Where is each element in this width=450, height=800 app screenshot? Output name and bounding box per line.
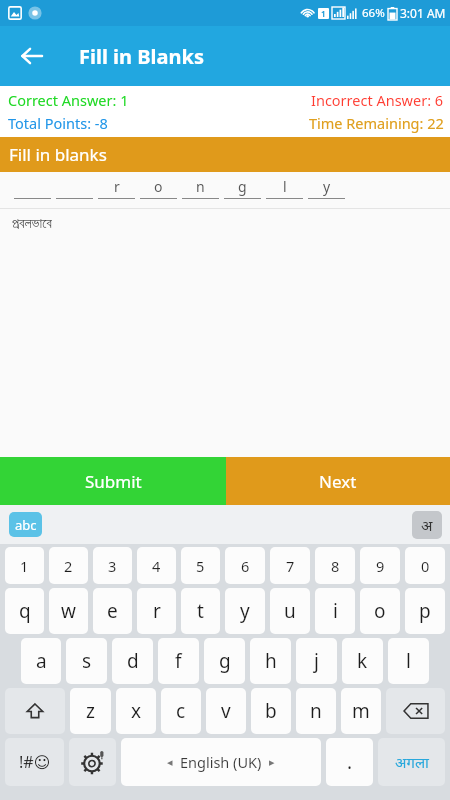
staticText: e xyxy=(107,598,118,624)
staticText: Next xyxy=(319,470,357,493)
staticText: d xyxy=(127,648,139,674)
button[interactable]: Next xyxy=(226,457,450,505)
button[interactable]: m xyxy=(341,688,381,734)
button[interactable]: Submit xyxy=(0,457,226,505)
staticText: g xyxy=(219,648,231,674)
staticText: l xyxy=(283,177,287,196)
staticText: o xyxy=(154,177,163,196)
staticText: English (UK) xyxy=(180,752,262,772)
button[interactable]: u xyxy=(270,588,310,634)
button[interactable]: 1 xyxy=(5,547,44,584)
staticText: Total Points: -8 xyxy=(8,113,108,133)
button[interactable]: . xyxy=(326,738,373,786)
staticText: Submit xyxy=(85,470,142,493)
staticText: l xyxy=(406,648,411,674)
button[interactable]: s xyxy=(66,638,107,684)
staticText: g xyxy=(238,177,247,196)
button[interactable]: l xyxy=(388,638,429,684)
button[interactable]: k xyxy=(342,638,383,684)
button[interactable]: z xyxy=(70,688,111,734)
button[interactable]: 3 xyxy=(93,547,132,584)
staticText: 6 xyxy=(241,556,250,576)
button[interactable]: अगला xyxy=(378,738,445,786)
staticText: अगला xyxy=(395,752,429,772)
staticText: p xyxy=(419,598,431,624)
staticText: . xyxy=(347,749,353,775)
button[interactable]: 0 xyxy=(405,547,445,584)
staticText: Incorrect Answer: 6 xyxy=(311,90,444,110)
staticText: y xyxy=(240,598,250,624)
staticText: !#☺ xyxy=(19,751,51,773)
staticText: abc xyxy=(15,516,37,534)
button[interactable]: Settings xyxy=(69,738,116,786)
staticText: Correct Answer: 1 xyxy=(8,90,129,110)
button[interactable]: g xyxy=(204,638,245,684)
button[interactable]: ◂ xyxy=(121,738,321,786)
staticText: n xyxy=(310,698,322,724)
staticText: अ xyxy=(421,515,433,535)
staticText: z xyxy=(86,698,95,724)
button[interactable]: Back xyxy=(10,34,54,78)
button[interactable]: h xyxy=(250,638,291,684)
button[interactable]: 9 xyxy=(360,547,400,584)
button[interactable]: i xyxy=(315,588,355,634)
button[interactable]: r xyxy=(137,588,176,634)
button[interactable]: Symbols and emoji xyxy=(5,738,64,786)
button[interactable]: 2 xyxy=(49,547,88,584)
staticText: ▸ xyxy=(269,756,275,769)
button[interactable]: Switch language xyxy=(412,511,442,539)
button[interactable]: t xyxy=(181,588,220,634)
staticText: 66% xyxy=(362,5,385,21)
staticText: 4 xyxy=(152,556,161,576)
staticText: প্রবলভাবে xyxy=(12,217,52,231)
staticText: 1 xyxy=(20,556,29,576)
button[interactable]: n xyxy=(296,688,336,734)
staticText: c xyxy=(176,698,186,724)
button[interactable]: 6 xyxy=(225,547,265,584)
button[interactable]: 7 xyxy=(270,547,310,584)
staticText: 3:01 AM xyxy=(400,5,446,21)
staticText: u xyxy=(284,598,296,624)
staticText: w xyxy=(61,598,76,624)
button[interactable]: x xyxy=(116,688,156,734)
staticText: t xyxy=(197,598,204,624)
staticText: o xyxy=(374,598,386,624)
button[interactable]: c xyxy=(161,688,201,734)
button[interactable]: abc xyxy=(9,512,42,537)
button[interactable]: e xyxy=(93,588,132,634)
button[interactable]: y xyxy=(225,588,265,634)
staticText: x xyxy=(131,698,142,724)
staticText: m xyxy=(352,698,370,724)
staticText: i xyxy=(333,598,338,624)
button[interactable]: v xyxy=(206,688,246,734)
button[interactable]: 5 xyxy=(181,547,220,584)
button[interactable]: d xyxy=(112,638,153,684)
button[interactable]: q xyxy=(5,588,44,634)
staticText: f xyxy=(175,648,182,674)
button[interactable]: f xyxy=(158,638,199,684)
staticText: s xyxy=(82,648,92,674)
button[interactable]: Backspace xyxy=(386,688,445,734)
staticText: 1 xyxy=(321,8,326,19)
button[interactable]: 8 xyxy=(315,547,355,584)
staticText: Fill in blanks xyxy=(9,143,107,166)
button[interactable]: b xyxy=(251,688,291,734)
button[interactable]: a xyxy=(21,638,61,684)
button[interactable]: w xyxy=(49,588,88,634)
button[interactable]: Shift xyxy=(5,688,65,734)
staticText: r xyxy=(153,598,161,624)
button[interactable]: 4 xyxy=(137,547,176,584)
button[interactable]: p xyxy=(405,588,445,634)
staticText: 0 xyxy=(421,556,430,576)
staticText: Fill in Blanks xyxy=(79,43,204,70)
staticText: y xyxy=(323,177,331,196)
button[interactable]: o xyxy=(360,588,400,634)
staticText: v xyxy=(221,698,231,724)
staticText: 5 xyxy=(196,556,205,576)
button[interactable]: j xyxy=(296,638,337,684)
staticText: 9 xyxy=(376,556,385,576)
staticText: n xyxy=(196,177,205,196)
staticText: j xyxy=(314,648,319,674)
staticText: q xyxy=(19,598,31,624)
staticText: Time Remaining: 22 xyxy=(309,113,444,133)
